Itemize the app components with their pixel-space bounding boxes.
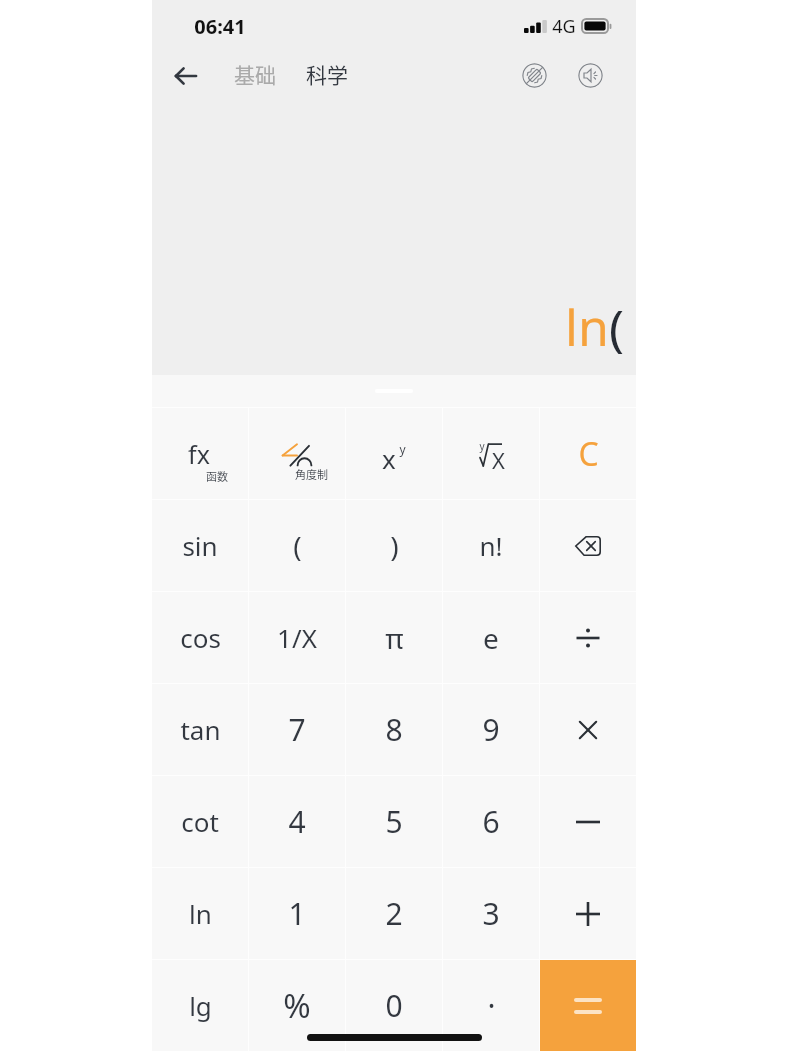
button[interactable]: cos <box>152 592 248 683</box>
button[interactable]: ln <box>152 868 248 959</box>
button[interactable]: 6 <box>443 776 539 867</box>
button[interactable]: ( <box>249 500 345 591</box>
button[interactable]: π <box>346 592 442 683</box>
button[interactable]: 4 <box>249 776 345 867</box>
button[interactable]: Sound <box>578 63 603 88</box>
button[interactable]: % <box>249 960 345 1051</box>
button[interactable]: ) <box>346 500 442 591</box>
button[interactable]: x <box>346 408 442 499</box>
button[interactable]: 8 <box>346 684 442 775</box>
button[interactable]: n! <box>443 500 539 591</box>
staticText: 0 <box>385 985 403 1026</box>
staticText: 函数 <box>206 468 228 484</box>
button[interactable]: 5 <box>346 776 442 867</box>
staticText: π <box>385 619 404 657</box>
staticText: 4 <box>288 801 306 842</box>
staticText: ) <box>390 527 399 565</box>
button[interactable]: Vibration off <box>522 63 547 88</box>
staticText: X <box>492 445 505 475</box>
staticText: 7 <box>288 709 306 750</box>
button[interactable]: · <box>443 960 539 1051</box>
button[interactable]: 3 <box>443 868 539 959</box>
staticText: 科学 <box>306 59 348 89</box>
button[interactable] <box>540 868 636 959</box>
staticText: n! <box>479 528 503 563</box>
staticText: e <box>483 619 499 657</box>
button[interactable]: 2 <box>346 868 442 959</box>
button[interactable]: 1 <box>249 868 345 959</box>
staticText: 6 <box>482 801 500 842</box>
button[interactable]: 7 <box>249 684 345 775</box>
staticText: 8 <box>385 709 403 750</box>
button[interactable]: y <box>443 408 539 499</box>
staticText: 基础 <box>234 59 276 89</box>
button[interactable] <box>540 592 636 683</box>
staticText: · <box>487 985 496 1026</box>
staticText: lg <box>189 988 212 1023</box>
staticText: 3 <box>482 893 500 934</box>
staticText: y <box>479 439 485 453</box>
button[interactable] <box>540 960 636 1051</box>
button[interactable] <box>540 500 636 591</box>
button[interactable]: 0 <box>346 960 442 1051</box>
button[interactable]: Back <box>164 54 208 98</box>
button[interactable]: C <box>540 408 636 499</box>
staticText: 4G <box>552 14 576 39</box>
button[interactable] <box>540 776 636 867</box>
staticText: 1 <box>288 893 306 934</box>
staticText: 角度制 <box>295 466 328 482</box>
button[interactable]: 1/X <box>249 592 345 683</box>
button[interactable]: tan <box>152 684 248 775</box>
button[interactable]: lg <box>152 960 248 1051</box>
staticText: cot <box>181 804 219 839</box>
staticText: 06:41 <box>194 13 246 40</box>
button[interactable]: e <box>443 592 539 683</box>
staticText: ( <box>293 527 302 565</box>
button[interactable]: 科学 <box>298 55 356 97</box>
button[interactable]: 9 <box>443 684 539 775</box>
button[interactable]: 角度制 <box>249 408 345 499</box>
staticText: ln <box>189 896 212 931</box>
staticText: ( <box>609 293 624 361</box>
staticText: y <box>399 441 406 457</box>
button[interactable]: 基础 <box>226 55 284 97</box>
staticText: 2 <box>385 893 403 934</box>
staticText: C <box>578 432 599 476</box>
staticText: x <box>382 441 396 475</box>
staticText: tan <box>180 712 221 747</box>
button[interactable]: fx <box>152 408 248 499</box>
staticText: % <box>283 983 311 1028</box>
button[interactable]: sin <box>152 500 248 591</box>
button[interactable]: cot <box>152 776 248 867</box>
button[interactable] <box>540 684 636 775</box>
staticText: ln <box>565 293 609 361</box>
staticText: cos <box>180 620 221 655</box>
staticText: sin <box>182 528 218 563</box>
staticText: 9 <box>482 709 500 750</box>
staticText: fx <box>188 437 210 471</box>
staticText: 1/X <box>277 620 317 655</box>
staticText: 5 <box>385 801 403 842</box>
